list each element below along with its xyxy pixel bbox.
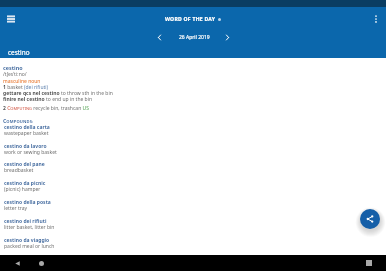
staticText: packed meal or lunch <box>4 243 55 250</box>
button[interactable]: Home <box>35 257 47 269</box>
staticText: litter basket, litter bin <box>4 224 55 231</box>
button[interactable]: cestino da lavoro <box>0 142 386 155</box>
button[interactable]: cestino della carta <box>0 123 386 136</box>
staticText: cestino dei rifiuti <box>4 218 47 225</box>
staticText: 2 COMPUTING recycle bin, trashcan US <box>3 105 89 112</box>
staticText: masculine noun <box>3 78 41 85</box>
staticText: 1 basket (dei rifiuti) <box>3 84 49 91</box>
button[interactable]: Previous day <box>153 31 165 43</box>
staticText: cestino da viaggio <box>4 237 50 244</box>
button[interactable]: Open navigation menu <box>4 12 18 26</box>
staticText: cestino della posta <box>4 199 51 206</box>
button[interactable]: cestino <box>8 48 30 57</box>
staticText: 26 April 2019 <box>179 34 210 41</box>
button[interactable]: Share <box>360 209 380 229</box>
staticText: letter tray <box>4 205 28 212</box>
button[interactable]: cestino della posta <box>0 198 386 211</box>
button[interactable]: More options <box>369 12 383 26</box>
button[interactable]: Recent apps <box>363 257 375 269</box>
staticText: breadbasket <box>4 167 34 174</box>
staticText: work or sewing basket <box>4 149 57 156</box>
button[interactable]: cestino dei rifiuti <box>0 217 386 230</box>
staticText: cestino del pane <box>4 161 45 168</box>
staticText: WORD OF THE DAY <box>165 16 216 23</box>
staticText: gettare qcs nel cestino to throw sth in … <box>3 90 113 97</box>
button[interactable]: cestino del pane <box>0 160 386 173</box>
staticText: cestino da picnic <box>4 180 46 187</box>
button[interactable]: cestino da viaggio <box>0 236 386 249</box>
button[interactable]: Next day <box>221 31 233 43</box>
staticText: (picnic) hamper <box>4 186 41 193</box>
button[interactable]: Back <box>11 257 23 269</box>
staticText: cestino <box>3 64 23 71</box>
staticText: COMPOUNDS: <box>3 117 34 124</box>
staticText: cestino della carta <box>4 124 50 131</box>
staticText: cestino da lavoro <box>4 143 47 150</box>
button[interactable]: cestino da picnic <box>0 179 386 192</box>
staticText: finire nel cestino to end up in the bin <box>3 96 93 103</box>
staticText: wastepaper basket <box>4 130 49 137</box>
staticText: /tʃesˈtiːno/ <box>3 71 27 78</box>
